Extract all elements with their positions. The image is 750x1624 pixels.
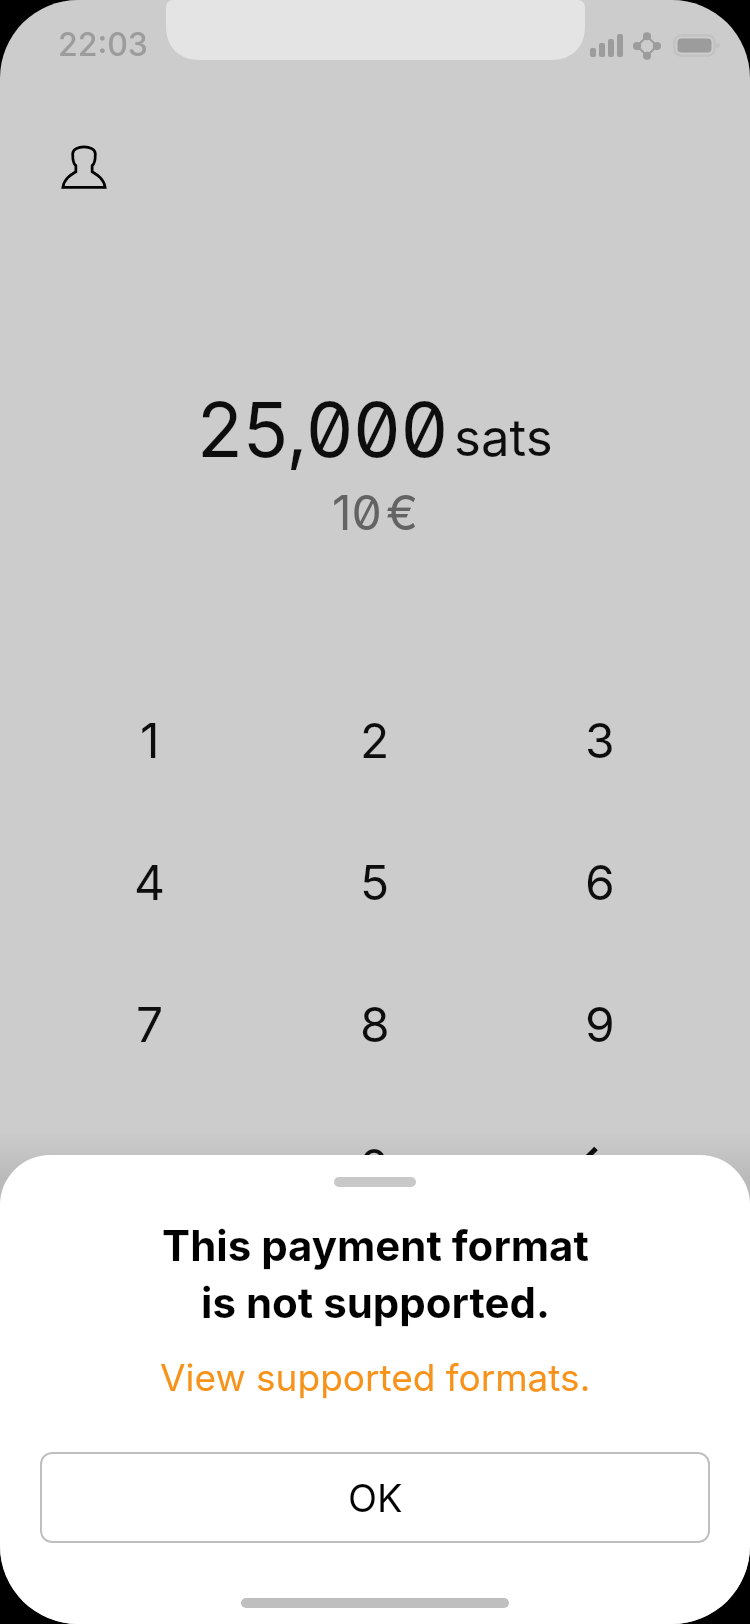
staticText: 3 <box>585 711 615 769</box>
staticText: 8 <box>360 995 390 1053</box>
staticText: 2 <box>360 711 390 769</box>
staticText: 0 <box>359 1137 390 1195</box>
button[interactable]: 8 <box>262 953 487 1095</box>
staticText: View supported formats. <box>160 1355 591 1400</box>
staticText: 7 <box>136 995 164 1053</box>
staticText: 25,000 <box>197 384 448 475</box>
button[interactable]: View supported formats. <box>148 1349 603 1406</box>
button[interactable]: . <box>38 1095 262 1237</box>
staticText: sats <box>454 407 553 469</box>
button[interactable]: Backspace <box>487 1095 712 1237</box>
staticText: 6 <box>585 853 615 911</box>
staticText: This payment format is not supported. <box>162 1220 589 1329</box>
staticText: . <box>143 1137 157 1195</box>
button[interactable]: 5 <box>262 811 487 953</box>
button[interactable]: 9 <box>487 953 712 1095</box>
button[interactable]: 1 <box>38 669 262 811</box>
button[interactable]: 3 <box>487 669 712 811</box>
staticText: 10 <box>332 483 382 541</box>
button[interactable]: OK <box>40 1452 710 1543</box>
button[interactable]: 7 <box>38 953 262 1095</box>
staticText: 5 <box>360 853 390 911</box>
button[interactable]: Profile <box>46 126 122 202</box>
button[interactable]: 2 <box>262 669 487 811</box>
staticText: 9 <box>585 995 615 1053</box>
staticText: 22:03 <box>58 25 148 64</box>
button[interactable]: 6 <box>487 811 712 953</box>
staticText: 1 <box>140 711 160 769</box>
staticText: OK <box>348 1475 403 1521</box>
button[interactable]: 0 <box>262 1095 487 1237</box>
button[interactable]: 4 <box>38 811 262 953</box>
staticText: € <box>386 483 418 541</box>
staticText: 4 <box>134 853 166 911</box>
